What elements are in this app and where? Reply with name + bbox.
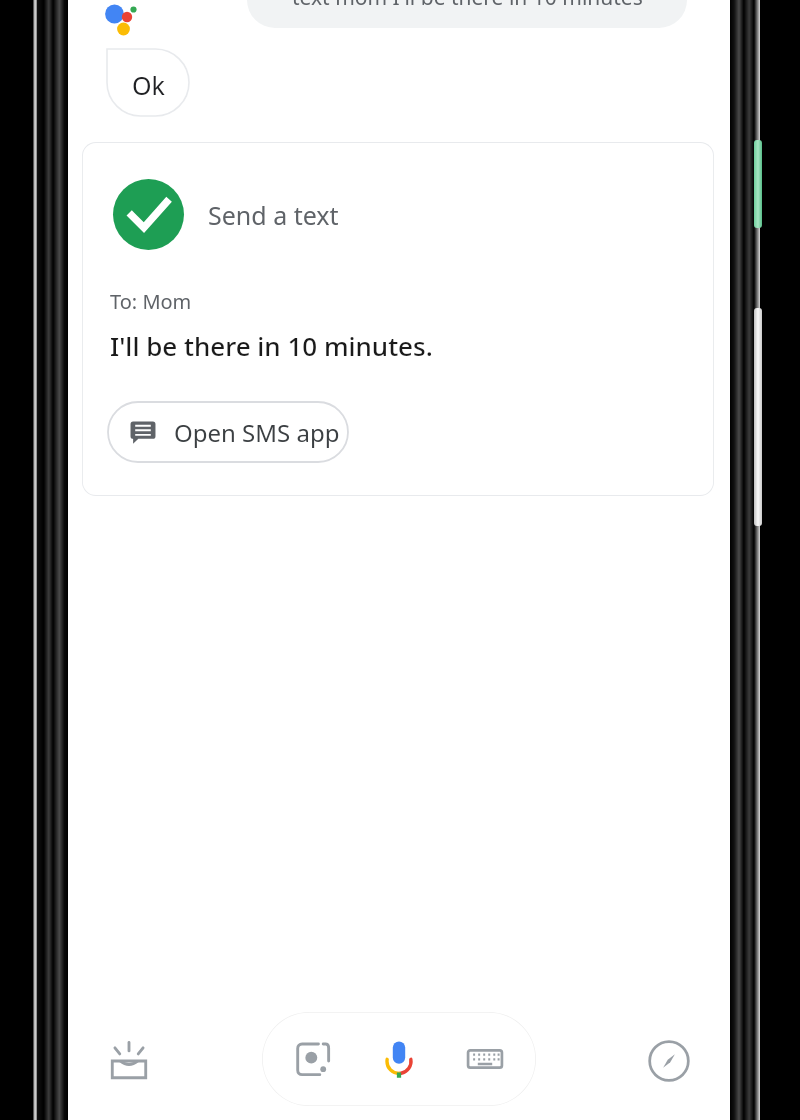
button[interactable]: Explore [634,1026,704,1096]
staticText: Ok [132,68,165,102]
button[interactable]: Snapshot [94,1026,164,1096]
button[interactable]: Send a text [82,142,714,496]
staticText: Send a text [208,198,339,232]
button[interactable]: Open SMS app [108,402,366,462]
button[interactable]: Keyboard [456,1030,514,1088]
button[interactable]: Voice search [370,1030,428,1088]
staticText: text mom I'll be there in 10 minutes [292,0,643,12]
staticText: To: Mom [110,288,192,315]
staticText: Open SMS app [174,416,340,449]
button[interactable]: Google Lens [284,1030,342,1088]
staticText: I'll be there in 10 minutes. [110,328,433,363]
